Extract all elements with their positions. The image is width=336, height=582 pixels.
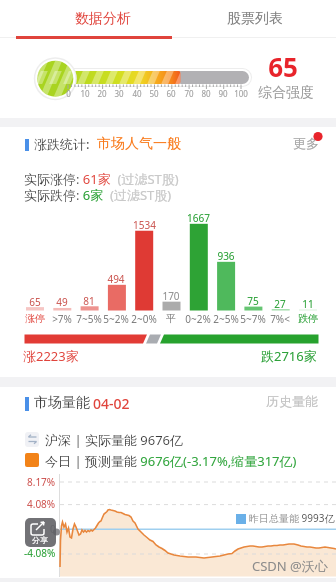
staticText: 实际涨停: 61家 (过滤ST股) bbox=[24, 170, 179, 188]
button[interactable]: 分享 bbox=[25, 518, 56, 547]
staticText: 今日 | 预测量能 9676亿(-3.17%,缩量317亿) bbox=[45, 452, 297, 470]
staticText: -4.08% bbox=[24, 546, 56, 560]
staticText: 936 bbox=[217, 249, 235, 263]
staticText: 历史量能 bbox=[266, 393, 318, 409]
staticText: 0~2% bbox=[185, 312, 211, 326]
staticText: 0 bbox=[50, 522, 56, 536]
staticText: 81 bbox=[83, 294, 95, 308]
staticText: 2~0% bbox=[131, 312, 157, 326]
staticText: 涨2223家 bbox=[23, 347, 79, 365]
staticText: 65 bbox=[268, 49, 298, 84]
staticText: 实际跌停: 6家 (过滤ST股) bbox=[24, 186, 172, 204]
staticText: 494 bbox=[107, 272, 125, 286]
staticText: 4.08% bbox=[27, 497, 56, 511]
staticText: 更多 bbox=[293, 135, 319, 151]
staticText: 50 bbox=[149, 88, 159, 99]
staticText: 75 bbox=[247, 294, 259, 308]
staticText: 沪深 | 实际量能 9676亿 bbox=[45, 431, 184, 449]
staticText: 0 bbox=[66, 88, 71, 99]
staticText: 20 bbox=[97, 88, 107, 99]
staticText: 5~7% bbox=[240, 312, 266, 326]
staticText: 涨停 bbox=[25, 312, 45, 325]
staticText: 市场人气一般 bbox=[97, 135, 181, 153]
button[interactable]: 历史量能 bbox=[262, 390, 326, 412]
staticText: 综合强度 bbox=[258, 84, 314, 102]
staticText: 平 bbox=[166, 312, 176, 325]
staticText: 60 bbox=[166, 88, 176, 99]
staticText: 27 bbox=[274, 297, 286, 311]
staticText: 11 bbox=[302, 297, 314, 311]
staticText: 涨跌统计: bbox=[34, 135, 90, 153]
button[interactable]: 数据分析 bbox=[16, 0, 190, 37]
staticText: 昨日总量能 9993亿 bbox=[249, 511, 335, 525]
staticText: 04-02 bbox=[93, 394, 130, 413]
staticText: 2~5% bbox=[213, 312, 239, 326]
button[interactable]: 股票列表 bbox=[190, 0, 320, 37]
staticText: 100 bbox=[234, 88, 248, 99]
staticText: CSDN @沃心 bbox=[252, 557, 328, 575]
staticText: 市场量能 bbox=[34, 394, 90, 412]
staticText: 70 bbox=[184, 88, 194, 99]
staticText: 80 bbox=[201, 88, 211, 99]
staticText: 49 bbox=[56, 295, 68, 309]
staticText: >7% bbox=[52, 312, 72, 326]
staticText: 7%< bbox=[270, 312, 290, 326]
staticText: 1667 bbox=[187, 211, 210, 225]
staticText: 5~2% bbox=[103, 312, 129, 326]
staticText: 40 bbox=[132, 88, 142, 99]
staticText: 分享 bbox=[32, 535, 48, 545]
staticText: 数据分析 bbox=[75, 10, 131, 28]
staticText: 10 bbox=[80, 88, 90, 99]
staticText: 170 bbox=[162, 289, 180, 303]
staticText: 8.17% bbox=[27, 475, 56, 489]
staticText: 跌停 bbox=[298, 312, 318, 325]
staticText: 90 bbox=[218, 88, 228, 99]
staticText: 7~5% bbox=[76, 312, 102, 326]
staticText: 1534 bbox=[133, 218, 156, 232]
staticText: 股票列表 bbox=[227, 10, 283, 28]
staticText: 65 bbox=[29, 295, 41, 309]
staticText: 30 bbox=[114, 88, 124, 99]
button[interactable]: 更多 bbox=[288, 130, 330, 154]
staticText: 跌2716家 bbox=[261, 347, 317, 365]
